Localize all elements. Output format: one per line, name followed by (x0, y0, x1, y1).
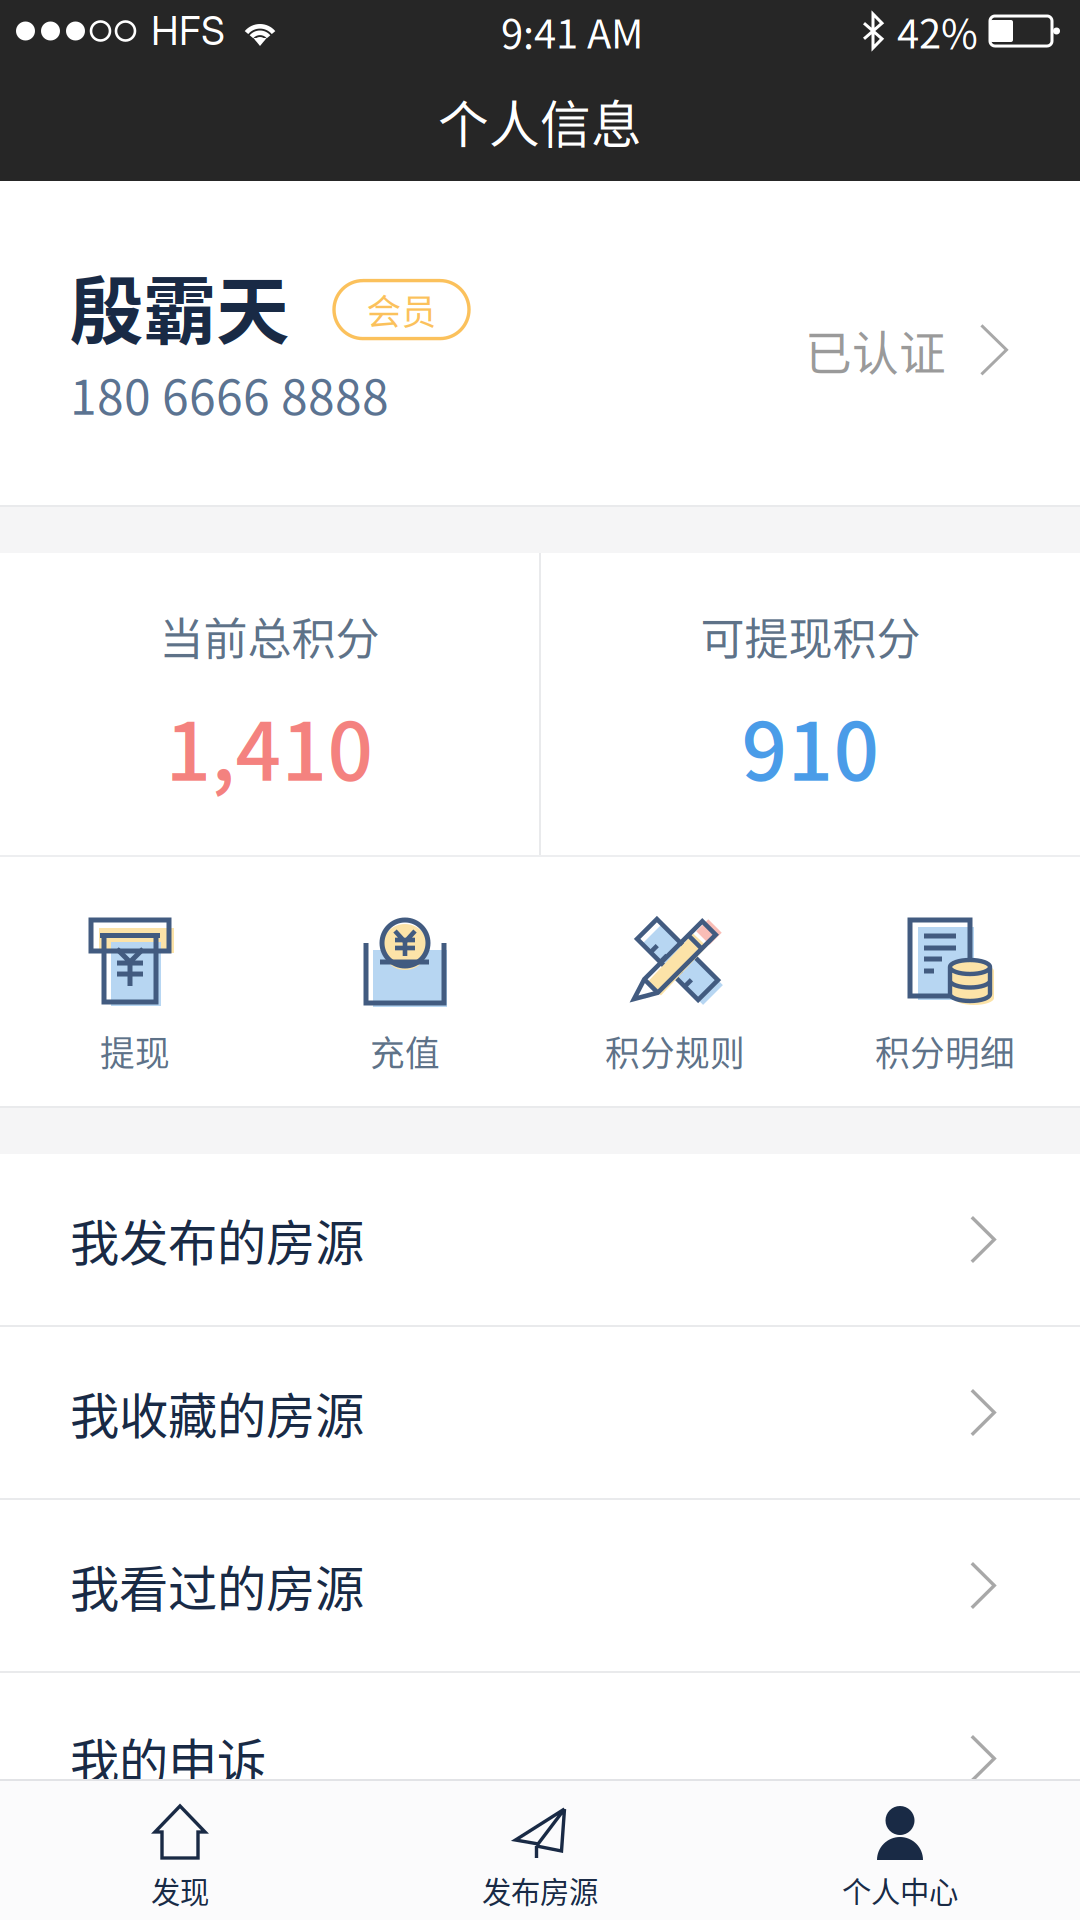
staticText: 当前总积分 (159, 604, 379, 668)
staticText: 个人信息 (438, 85, 642, 158)
staticText: 充值 (370, 1026, 440, 1076)
staticText: 发现 (151, 1869, 209, 1911)
staticText: 会员 (366, 284, 436, 335)
staticText: 可提现积分 (700, 604, 920, 668)
staticText: 1,410 (165, 688, 373, 804)
staticText: 我收藏的房源 (70, 1377, 364, 1448)
staticText: 殷霸天 (70, 253, 289, 359)
button[interactable]: 积分明细 (810, 857, 1080, 1106)
button[interactable]: 我的申诉 (0, 1673, 1080, 1844)
staticText: 积分规则 (605, 1026, 745, 1076)
staticText: 发布房源 (482, 1869, 598, 1911)
staticText: 积分明细 (875, 1026, 1015, 1076)
staticText: 个人中心 (842, 1869, 958, 1911)
staticText: 180 6666 8888 (70, 359, 389, 429)
button[interactable]: 个人中心 (720, 1781, 1080, 1920)
button[interactable]: 我发布的房源 (0, 1154, 1080, 1325)
staticText: 已认证 (805, 316, 946, 384)
staticText: 42% (897, 2, 978, 60)
button[interactable]: 充值 (270, 857, 540, 1106)
button[interactable]: 积分规则 (540, 857, 810, 1106)
button[interactable]: 我看过的房源 (0, 1500, 1080, 1671)
staticText: 我的申诉 (70, 1723, 266, 1794)
staticText: 9:41 AM (501, 2, 643, 60)
button[interactable]: 发布房源 (360, 1781, 720, 1920)
staticText: 我发布的房源 (70, 1204, 364, 1275)
staticText: 910 (741, 688, 879, 804)
staticText: 提现 (100, 1026, 170, 1076)
staticText: 我看过的房源 (70, 1550, 364, 1621)
button[interactable]: 发现 (0, 1781, 360, 1920)
button[interactable]: 殷霸天 (0, 181, 1080, 505)
staticText: HFS (151, 8, 225, 54)
button[interactable]: 提现 (0, 857, 270, 1106)
button[interactable]: 我收藏的房源 (0, 1327, 1080, 1498)
